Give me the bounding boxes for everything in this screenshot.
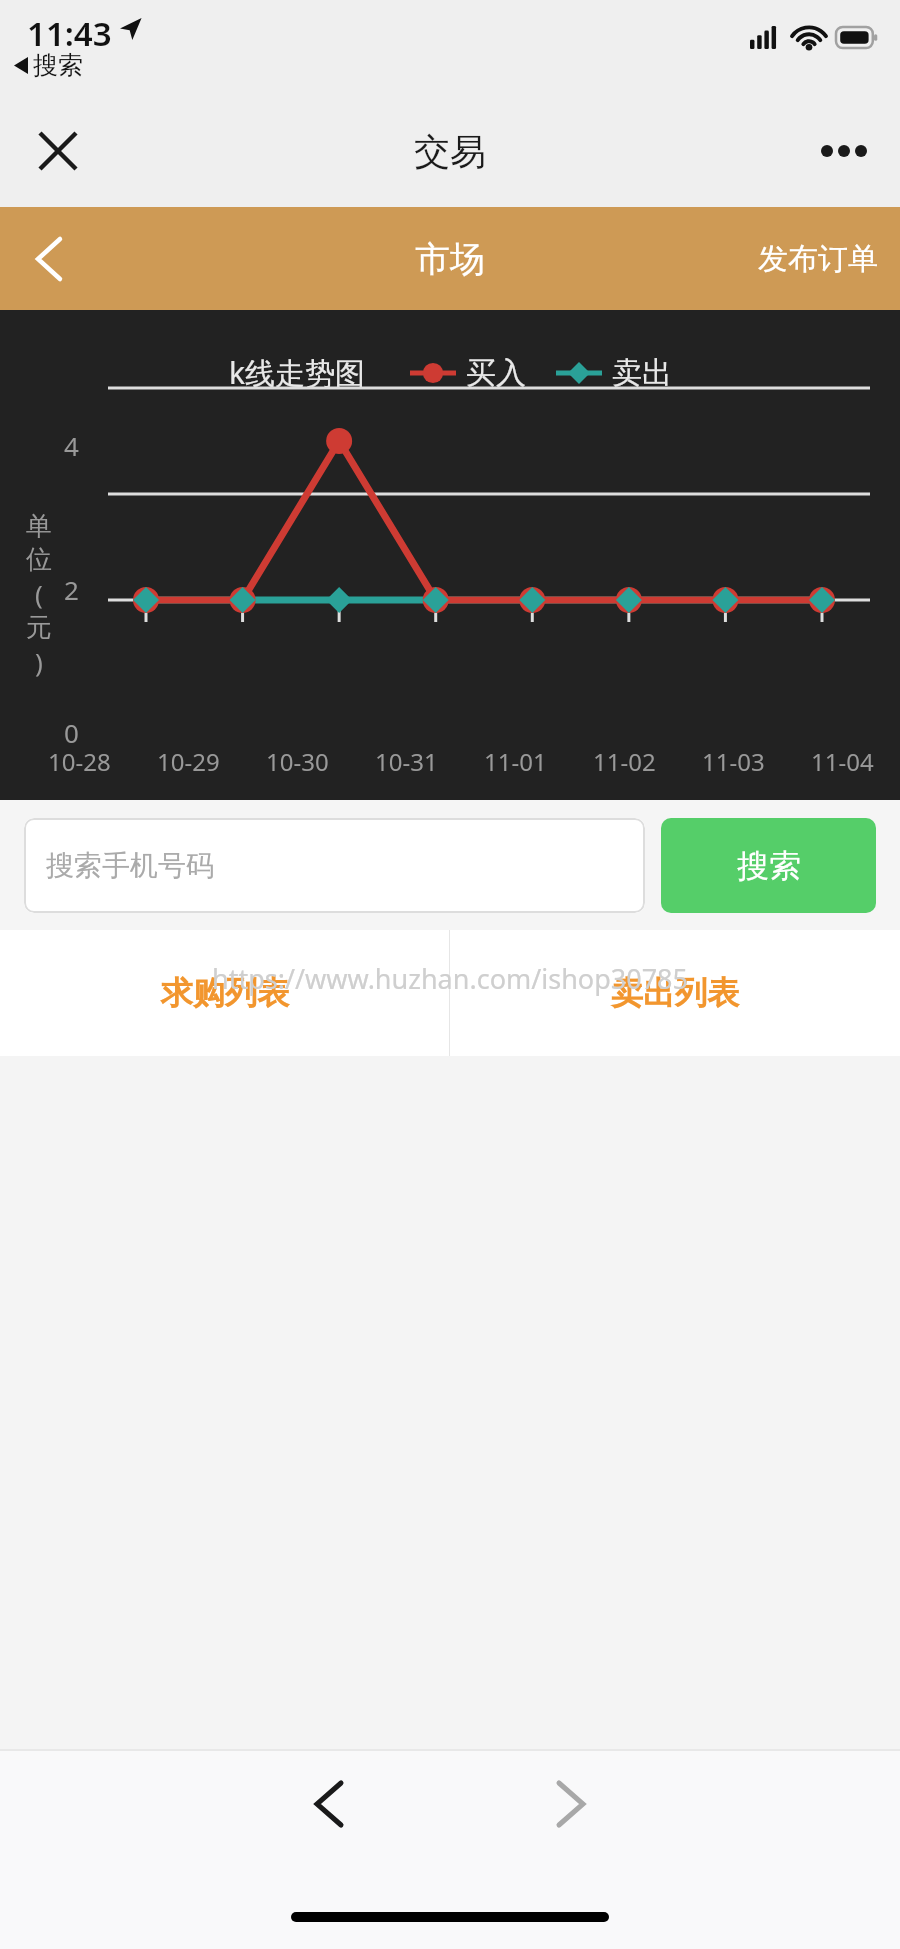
staticText: 搜索 — [737, 846, 801, 886]
staticText: 11:43 — [27, 11, 112, 56]
button[interactable]: 求购列表 — [0, 930, 449, 1056]
staticText: 元 — [26, 611, 52, 644]
button[interactable]: Close — [30, 123, 86, 179]
staticText: 10-30 — [266, 745, 329, 778]
staticText: 市场 — [415, 237, 485, 281]
staticText: 10-31 — [375, 745, 438, 778]
staticText: 发布订单 — [758, 240, 878, 278]
staticText: 交易 — [414, 129, 486, 174]
staticText: 11-01 — [484, 745, 547, 778]
button[interactable]: Previous page — [284, 1759, 374, 1849]
staticText: https://www.huzhan.com/ishop30785 — [212, 960, 689, 997]
staticText: ( — [35, 576, 43, 611]
staticText: 搜索 — [33, 50, 83, 81]
button[interactable]: Next page — [526, 1759, 616, 1849]
staticText: 4 — [64, 428, 79, 463]
staticText: 卖出 — [612, 354, 672, 392]
button[interactable]: 发布订单 — [750, 230, 886, 288]
staticText: 11-04 — [811, 745, 874, 778]
button[interactable]: More options — [812, 119, 876, 183]
staticText: 位 — [26, 543, 52, 576]
button[interactable]: 搜索 — [661, 818, 876, 913]
staticText: 求购列表 — [161, 973, 289, 1013]
staticText: 卖出列表 — [611, 973, 739, 1013]
staticText: 11-02 — [593, 745, 656, 778]
button[interactable]: Back — [18, 228, 80, 290]
staticText: 买入 — [466, 354, 526, 392]
staticText: 11-03 — [702, 745, 765, 778]
staticText: ) — [35, 644, 43, 679]
staticText: 单 — [26, 510, 52, 543]
button[interactable]: 搜索手机号码 — [24, 818, 645, 913]
staticText: 2 — [64, 572, 79, 607]
staticText: 0 — [64, 715, 79, 750]
staticText: 10-29 — [157, 745, 220, 778]
button[interactable]: 卖出列表 — [450, 930, 900, 1056]
staticText: 搜索手机号码 — [46, 848, 214, 883]
staticText: 10-28 — [48, 745, 111, 778]
staticText: k线走势图 — [229, 352, 366, 393]
